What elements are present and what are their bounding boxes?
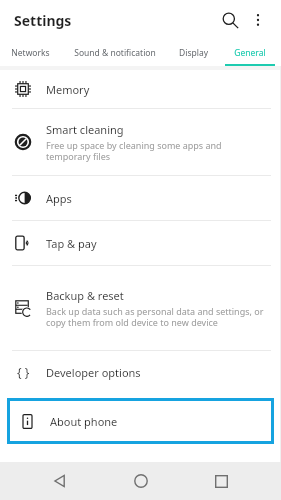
staticText: Apps <box>46 191 72 206</box>
button[interactable]: Networks <box>0 40 61 66</box>
button[interactable]: More options <box>245 7 271 33</box>
button[interactable]: Search <box>215 5 245 35</box>
button[interactable]: About phone <box>10 401 271 441</box>
staticText: Free up space by cleaning some apps and … <box>46 139 265 163</box>
staticText: Tap & pay <box>46 236 97 251</box>
staticText: Settings <box>14 11 72 30</box>
button[interactable]: Backup & reset <box>0 266 281 350</box>
button[interactable]: Memory <box>0 70 281 108</box>
staticText: Memory <box>46 82 90 97</box>
staticText: Developer options <box>46 365 141 380</box>
staticText: Smart cleaning <box>46 122 124 137</box>
staticText: Back up data such as personal data and s… <box>46 305 265 329</box>
button[interactable]: Back <box>40 462 80 500</box>
button[interactable]: Apps <box>0 176 281 220</box>
button[interactable]: General <box>218 40 281 66</box>
button[interactable]: Smart cleaning <box>0 109 281 175</box>
button[interactable]: { } <box>0 351 281 393</box>
staticText: General <box>234 47 266 59</box>
button[interactable]: Display <box>169 40 218 66</box>
button[interactable]: Home <box>121 462 161 500</box>
staticText: About phone <box>50 414 118 429</box>
button[interactable]: Recents <box>201 462 241 500</box>
button[interactable]: Tap & pay <box>0 221 281 265</box>
staticText: Backup & reset <box>46 288 124 303</box>
staticText: Networks <box>11 47 50 59</box>
staticText: { } <box>17 364 30 380</box>
staticText: Display <box>179 47 208 59</box>
button[interactable]: Sound & notification <box>61 40 169 66</box>
staticText: Sound & notification <box>74 47 156 59</box>
